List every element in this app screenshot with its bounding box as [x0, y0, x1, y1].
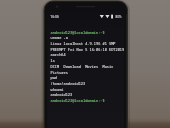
- button[interactable]: Status bar: [47, 12, 124, 22]
- button[interactable]: Terminal output: [47, 25, 124, 128]
